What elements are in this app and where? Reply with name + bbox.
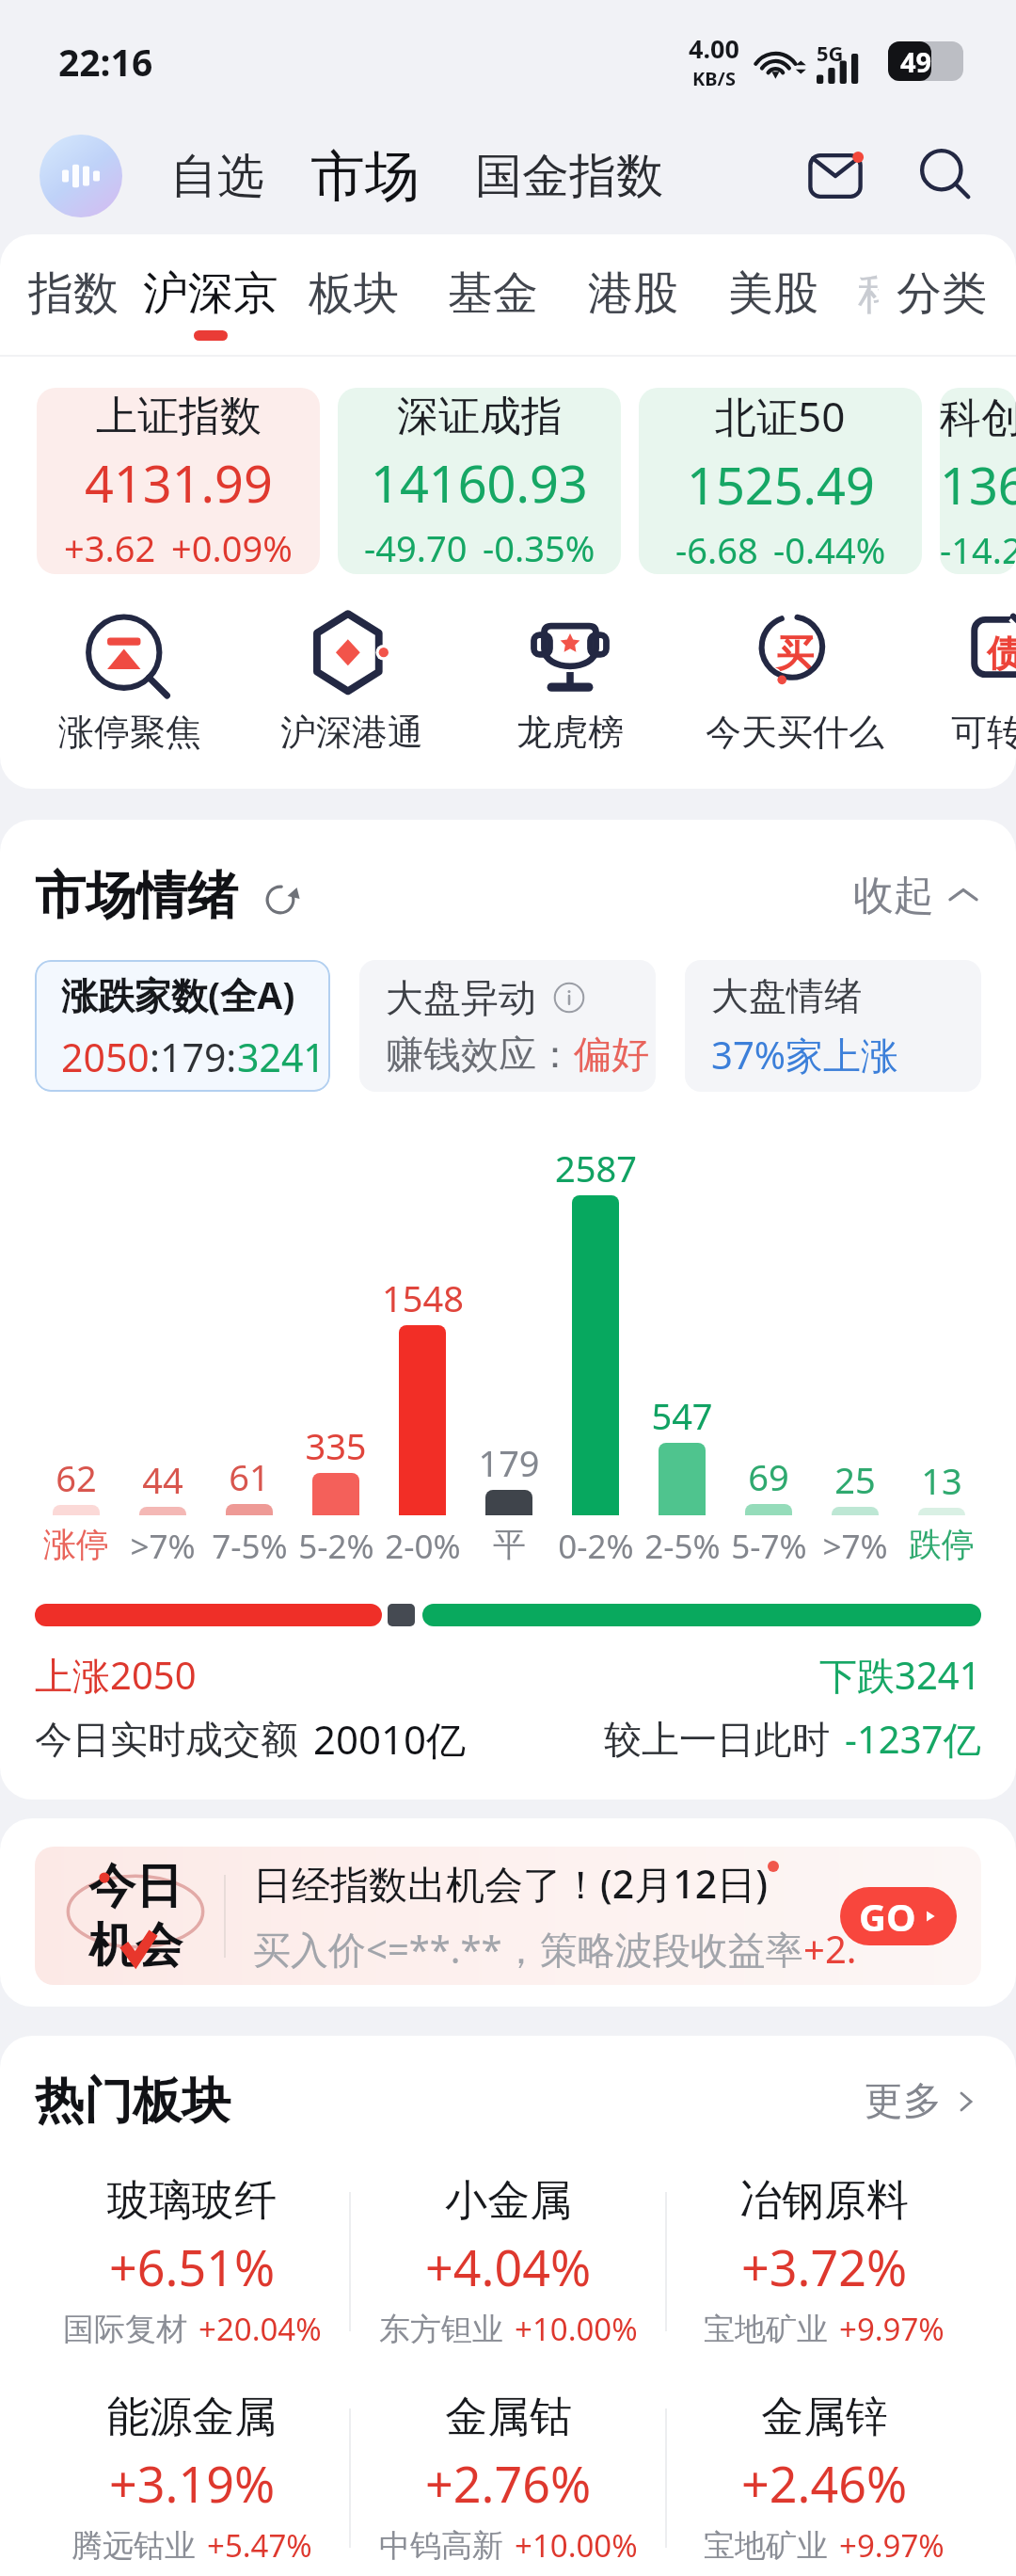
button[interactable]: 上证指数 (37, 388, 320, 574)
staticText: 62 (56, 1453, 97, 1502)
button[interactable]: 债 (882, 610, 1016, 755)
button[interactable]: 大盘情绪 (685, 960, 981, 1092)
staticText: +2.46% (741, 2450, 908, 2517)
staticText: -14.24 (940, 525, 1016, 574)
staticText: +20.04% (198, 2308, 322, 2350)
button[interactable]: 国金指数 (467, 134, 672, 219)
staticText: 大盘异动 (386, 974, 536, 1021)
staticText: 国际复材 (63, 2310, 187, 2349)
button[interactable]: GO (840, 1887, 957, 1945)
button[interactable]: 今日 (35, 1847, 981, 1985)
staticText: >7% (130, 1524, 196, 1569)
staticText: 1360.06 (940, 450, 1016, 520)
staticText: :179: (150, 1031, 237, 1083)
staticText: 涨跌家数(全A) (61, 969, 295, 1019)
staticText: -49.70 (364, 523, 468, 572)
staticText: 龙虎榜 (516, 710, 624, 755)
staticText: 5-2% (298, 1524, 374, 1569)
staticText: +2.... (803, 1923, 855, 1974)
button[interactable]: 龙虎榜 (448, 610, 692, 755)
button[interactable]: 港股 (575, 234, 691, 357)
staticText: 玻璃玻纤 (107, 2174, 277, 2228)
staticText: 国金指数 (475, 147, 663, 206)
button[interactable]: 能源金属 (35, 2389, 349, 2568)
staticText: +9.97% (839, 2308, 945, 2350)
staticText: 44 (142, 1455, 183, 1504)
button[interactable]: 大盘异动 (359, 960, 656, 1092)
staticText: 偏好 (574, 1031, 649, 1078)
staticText: 今日实时成交额 (35, 1716, 298, 1763)
staticText: 能源金属 (107, 2391, 277, 2444)
staticText: GO (859, 1891, 916, 1942)
staticText: -1237亿 (845, 1713, 981, 1765)
button[interactable]: 买 (673, 610, 917, 755)
button[interactable]: 玻璃玻纤 (35, 2172, 349, 2351)
button[interactable]: 金属锌 (667, 2389, 981, 2568)
staticText: +5.47% (207, 2524, 312, 2567)
staticText: 买入价<=**.**，策略波段收益率 (253, 1923, 803, 1975)
staticText: 上涨2050 (35, 1649, 197, 1701)
staticText: 69 (748, 1452, 789, 1501)
button[interactable]: 市场 (302, 131, 428, 222)
staticText: 179 (478, 1438, 540, 1487)
staticText: +3.19% (109, 2450, 276, 2517)
staticText: 平 (493, 1524, 526, 1565)
button[interactable]: 分类 (883, 234, 1000, 357)
staticText: -0.35% (483, 523, 595, 572)
button[interactable]: 板块 (295, 234, 412, 357)
button[interactable]: 沪深港通 (230, 610, 474, 755)
button[interactable]: 小金属 (351, 2172, 665, 2351)
staticText: 0-2% (558, 1524, 634, 1569)
button[interactable]: 涨跌家数(全A) (35, 960, 330, 1092)
button[interactable]: 深证成指 (338, 388, 621, 574)
staticText: 1548 (382, 1273, 464, 1322)
staticText: 市场 (310, 142, 420, 211)
button[interactable]: 自选 (162, 134, 273, 219)
staticText: +2.76% (425, 2450, 592, 2517)
staticText: 东方钽业 (379, 2310, 503, 2349)
staticText: 港股 (588, 265, 678, 322)
button[interactable]: 北证50 (639, 388, 922, 574)
staticText: 37%家上涨 (711, 1029, 898, 1080)
staticText: 债 (987, 631, 1016, 676)
staticText: 5G (817, 39, 844, 67)
staticText: 2-5% (644, 1524, 721, 1569)
button[interactable]: Messages (795, 136, 876, 216)
button[interactable]: 指数 (15, 234, 132, 357)
staticText: -6.68 (675, 525, 758, 574)
staticText: 科创50 (940, 388, 1016, 444)
staticText: 今日 (88, 1857, 183, 1916)
button[interactable]: 更多 (865, 2077, 981, 2126)
button[interactable]: 科创50 (940, 388, 1016, 574)
staticText: 2-0% (385, 1524, 461, 1569)
button[interactable]: 美股 (715, 234, 832, 357)
button[interactable]: 基金 (435, 234, 551, 357)
staticText: 4.00 (689, 31, 739, 66)
staticText: 热门板块 (35, 2071, 230, 2133)
staticText: 上证指数 (96, 391, 262, 442)
staticText: 13 (921, 1456, 962, 1505)
staticText: +3.72% (741, 2233, 908, 2300)
staticText: 20010亿 (313, 1712, 467, 1766)
button[interactable]: 沪深京 (130, 234, 292, 357)
staticText: 涨停聚焦 (58, 710, 201, 755)
button[interactable]: Search (905, 136, 986, 216)
staticText: 金属锌 (761, 2391, 888, 2444)
button[interactable]: 收起 (853, 871, 981, 921)
staticText: 板块 (309, 265, 399, 322)
button[interactable]: 涨停聚焦 (8, 610, 252, 755)
staticText: KB/S (692, 66, 736, 91)
staticText: 深证成指 (397, 391, 563, 442)
staticText: 宝地矿业 (704, 2526, 828, 2566)
staticText: 可转债 (951, 710, 1016, 755)
staticText: 61 (229, 1452, 270, 1501)
staticText: 赚钱效应： (386, 1031, 574, 1078)
staticText: 日经指数出机会了！(2月12日) (253, 1857, 768, 1910)
staticText: 下跌3241 (819, 1649, 981, 1701)
button[interactable]: 冶钢原料 (667, 2172, 981, 2351)
staticText: 市场情绪 (35, 864, 238, 928)
staticText: 4131.99 (85, 448, 273, 518)
staticText: 小金属 (445, 2174, 572, 2228)
staticText: 科 (858, 265, 879, 322)
button[interactable]: 金属钴 (351, 2389, 665, 2568)
